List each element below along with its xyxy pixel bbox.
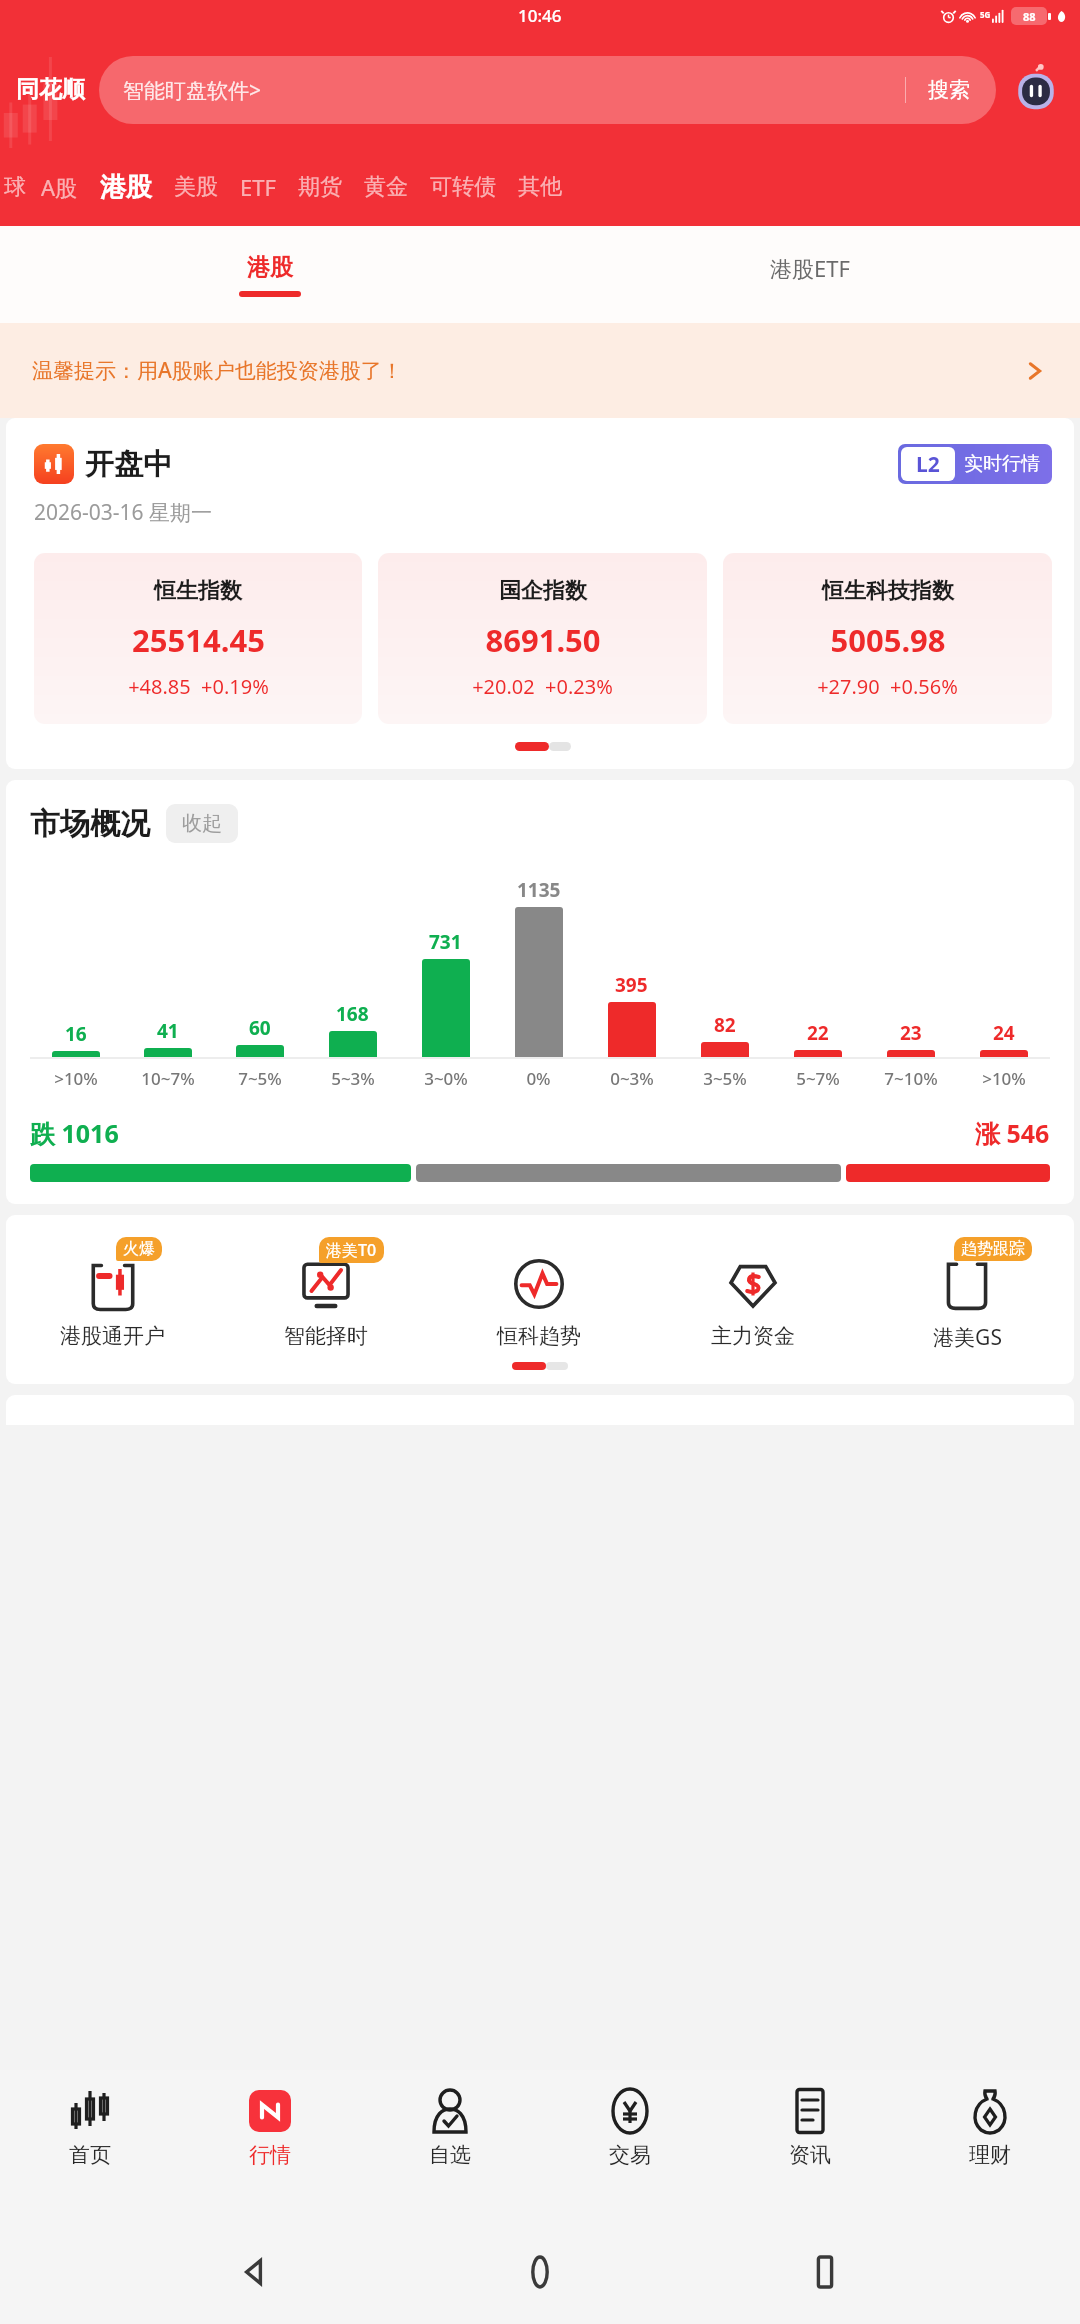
staticText: 3~0% [424, 1067, 468, 1090]
staticText: 22 [807, 1020, 829, 1046]
staticText: 港股 [100, 171, 152, 204]
button[interactable]: 港股 [0, 226, 540, 323]
button[interactable]: 智能盯盘软件> [99, 56, 996, 124]
staticText: 88 [1023, 9, 1036, 23]
button[interactable]: 理财 [900, 2070, 1080, 2220]
staticText: +20.02 +0.23% [472, 673, 613, 700]
button[interactable]: 趋势跟踪 [860, 1237, 1074, 1352]
staticText: L2 [916, 450, 940, 479]
button[interactable]: 港美T0 [219, 1237, 432, 1349]
staticText: 82 [714, 1012, 736, 1038]
staticText: 趋势跟踪 [961, 1239, 1025, 1259]
button[interactable]: Recent apps [795, 2242, 855, 2302]
staticText: 60 [249, 1015, 271, 1041]
staticText: 市场概况 [30, 805, 150, 843]
staticText: +27.90 +0.56% [817, 673, 958, 700]
staticText: 1135 [517, 877, 561, 903]
button[interactable]: 球 [4, 173, 26, 201]
button[interactable]: 恒生指数 [34, 553, 362, 724]
staticText: 搜索 [928, 77, 970, 103]
button[interactable]: 港股ETF [540, 226, 1080, 323]
button[interactable]: 恒生科技指数 [723, 553, 1052, 724]
button[interactable]: 温馨提示：用A股账户也能投资港股了！ [0, 323, 1080, 418]
staticText: 其他 [518, 173, 562, 201]
staticText: 恒科趋势 [497, 1323, 581, 1349]
button[interactable]: 自选 [360, 2070, 540, 2220]
staticText: 温馨提示：用A股账户也能投资港股了！ [32, 356, 1022, 385]
button[interactable]: Home [510, 2242, 570, 2302]
staticText: 黄金 [364, 173, 408, 201]
staticText: 恒生科技指数 [822, 577, 954, 605]
staticText: 10~7% [141, 1067, 195, 1090]
staticText: 美股 [174, 173, 218, 201]
button[interactable]: 交易 [540, 2070, 720, 2220]
staticText: 7~10% [884, 1067, 938, 1090]
staticText: 25514.45 [132, 619, 265, 661]
staticText: 资讯 [789, 2142, 831, 2168]
staticText: 5005.98 [830, 619, 946, 661]
button[interactable]: 其他 [518, 173, 562, 201]
button[interactable]: 国企指数 [378, 553, 707, 724]
staticText: 23 [900, 1020, 922, 1046]
staticText: +48.85 +0.19% [128, 673, 269, 700]
button[interactable]: 恒科趋势 [432, 1237, 646, 1349]
staticText: 恒生指数 [154, 577, 242, 605]
staticText: >10% [982, 1067, 1026, 1090]
staticText: 首页 [69, 2142, 111, 2168]
button[interactable]: Back [225, 2242, 285, 2302]
button[interactable]: A股 [41, 172, 78, 202]
staticText: 3~5% [703, 1067, 747, 1090]
staticText: 可转债 [430, 173, 496, 201]
button[interactable]: 收起 [166, 804, 238, 843]
staticText: 5~3% [331, 1067, 375, 1090]
staticText: 港美T0 [326, 1239, 377, 1261]
button[interactable]: AI assistant [1008, 62, 1064, 118]
button[interactable]: 美股 [174, 173, 218, 201]
staticText: 港股通开户 [60, 1323, 165, 1349]
staticText: 国企指数 [499, 577, 587, 605]
staticText: 5~7% [796, 1067, 840, 1090]
button[interactable]: ETF [240, 172, 276, 202]
staticText: 168 [336, 1001, 369, 1027]
staticText: 球 [4, 173, 26, 201]
staticText: 自选 [429, 2142, 471, 2168]
staticText: 期货 [298, 173, 342, 201]
staticText: 10:46 [518, 4, 562, 27]
staticText: 开盘中 [85, 446, 172, 483]
staticText: 0% [526, 1067, 551, 1090]
button[interactable]: L2 [898, 444, 1052, 484]
button[interactable]: 港股 [100, 171, 152, 204]
staticText: 港美GS [933, 1323, 1002, 1352]
button[interactable]: 期货 [298, 173, 342, 201]
button[interactable]: 首页 [0, 2070, 180, 2220]
staticText: A股 [41, 172, 78, 202]
staticText: 港股ETF [770, 253, 850, 283]
staticText: 交易 [609, 2142, 651, 2168]
staticText: 收起 [182, 811, 222, 836]
staticText: 395 [615, 972, 648, 998]
button[interactable]: 火爆 [6, 1237, 219, 1349]
staticText: 主力资金 [711, 1323, 795, 1349]
staticText: 理财 [969, 2142, 1011, 2168]
staticText: 8691.50 [485, 619, 601, 661]
staticText: 智能择时 [284, 1323, 368, 1349]
button[interactable]: 黄金 [364, 173, 408, 201]
staticText: 24 [993, 1020, 1015, 1046]
staticText: 41 [157, 1018, 179, 1044]
button[interactable]: 可转债 [430, 173, 496, 201]
staticText: 7~5% [238, 1067, 282, 1090]
staticText: 涨 546 [975, 1116, 1050, 1150]
staticText: 跌 1016 [30, 1116, 119, 1150]
button[interactable]: 资讯 [720, 2070, 900, 2220]
staticText: 实时行情 [964, 452, 1040, 476]
staticText: 港股 [247, 253, 293, 282]
button[interactable]: 主力资金 [646, 1237, 860, 1349]
staticText: 731 [429, 929, 462, 955]
staticText: 5G [980, 9, 991, 20]
staticText: 火爆 [123, 1239, 155, 1259]
staticText: >10% [54, 1067, 98, 1090]
staticText: 2026-03-16 星期一 [34, 498, 213, 527]
staticText: ETF [240, 172, 276, 202]
staticText: 0~3% [610, 1067, 654, 1090]
button[interactable]: 行情 [180, 2070, 360, 2220]
